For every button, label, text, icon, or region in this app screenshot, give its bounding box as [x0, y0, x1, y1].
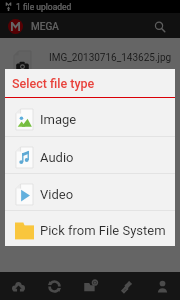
staticText: MEGA — [31, 21, 59, 33]
staticText: Image — [40, 112, 77, 127]
staticText: Select file type — [12, 76, 95, 91]
staticText: IMG_20130716_143701.jpg — [49, 81, 172, 93]
staticText: Audio — [40, 150, 74, 165]
button[interactable]: Account — [144, 272, 180, 300]
staticText: Video — [40, 187, 74, 202]
staticText: Pick from File System — [40, 223, 166, 238]
button[interactable]: IMG_20130716_145101.jpg — [0, 159, 180, 188]
button[interactable]: IMG_20130716_145533.jpg — [0, 188, 180, 217]
button[interactable]: IMG_20130716_144012.jpg — [0, 101, 180, 130]
staticText: IMG_20130716_143625.jpg — [49, 52, 172, 64]
button[interactable]: Sync — [36, 272, 72, 300]
button[interactable]: IMG_20130716_143701.jpg — [0, 72, 180, 101]
button[interactable]: Pick from File System — [5, 211, 175, 246]
button[interactable]: Cloud drive — [0, 272, 36, 300]
staticText: IMG_20130716_145533.jpg — [49, 197, 172, 209]
button[interactable]: Shared links — [108, 272, 144, 300]
button[interactable]: Audio — [5, 137, 175, 173]
button[interactable]: Search — [149, 15, 171, 37]
staticText: IMG_20130716_145101.jpg — [49, 168, 172, 180]
button[interactable]: Video — [5, 174, 175, 210]
button[interactable]: Image — [5, 98, 175, 136]
staticText: IMG_20130716_144012.jpg — [49, 110, 172, 122]
button[interactable]: New folder — [72, 272, 108, 300]
button[interactable]: IMG_20130716_144530.jpg — [0, 130, 180, 159]
button[interactable]: IMG_20130716_143625.jpg — [0, 43, 180, 72]
staticText: 1 file uploaded — [16, 2, 72, 12]
